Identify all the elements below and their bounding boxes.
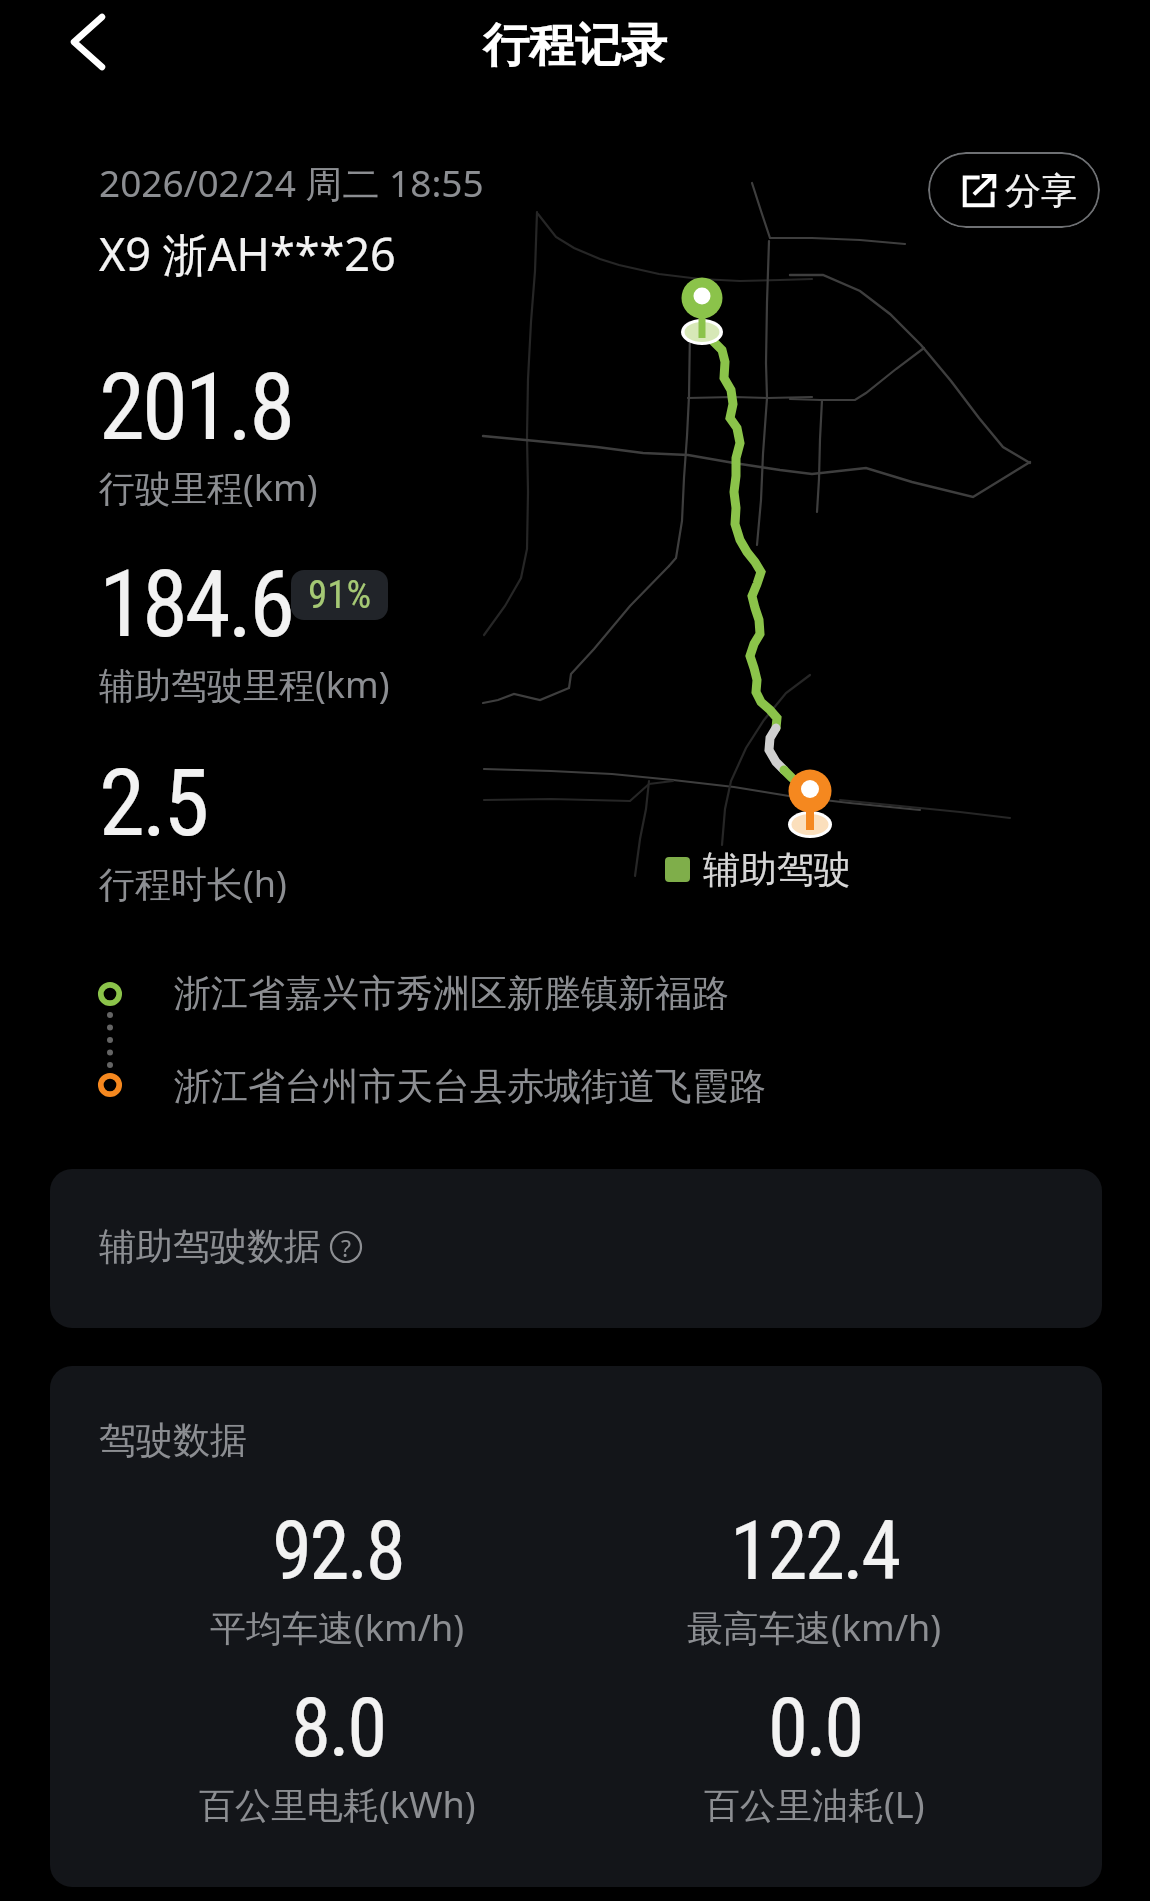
staticText: 行程时长(h) xyxy=(99,859,287,908)
staticText: 辅助驾驶 xyxy=(703,846,851,893)
staticText: 最高车速(km/h) xyxy=(687,1603,942,1652)
staticText: 平均车速(km/h) xyxy=(210,1603,465,1652)
staticText: 122.4 xyxy=(730,1504,899,1599)
staticText: X9 浙AH***26 xyxy=(99,223,396,284)
staticText: 浙江省嘉兴市秀洲区新塍镇新福路 xyxy=(174,970,729,1017)
staticText: ? xyxy=(341,1232,351,1263)
staticText: 0.0 xyxy=(768,1681,862,1776)
staticText: 辅助驾驶数据 xyxy=(99,1223,321,1270)
staticText: 百公里电耗(kWh) xyxy=(199,1780,476,1829)
staticText: 行驶里程(km) xyxy=(99,463,318,512)
button[interactable]: 辅助驾驶数据 xyxy=(50,1169,1102,1328)
staticText: 8.0 xyxy=(291,1681,385,1776)
staticText: 行程记录 xyxy=(483,17,667,75)
button[interactable]: Back xyxy=(46,0,130,84)
staticText: 91% xyxy=(308,572,372,618)
staticText: 2.5 xyxy=(99,749,207,858)
staticText: 201.8 xyxy=(99,353,293,462)
button[interactable]: 分享 Share xyxy=(928,152,1100,228)
staticText: 184.6 xyxy=(99,550,293,659)
staticText: 2026/02/24 周二 18:55 xyxy=(99,157,484,208)
staticText: 辅助驾驶里程(km) xyxy=(99,660,390,709)
staticText: 百公里油耗(L) xyxy=(704,1780,925,1829)
staticText: 驾驶数据 xyxy=(99,1417,247,1464)
staticText: 浙江省台州市天台县赤城街道飞霞路 xyxy=(174,1063,766,1110)
staticText: 分享 xyxy=(1005,168,1077,213)
staticText: 92.8 xyxy=(272,1504,404,1599)
